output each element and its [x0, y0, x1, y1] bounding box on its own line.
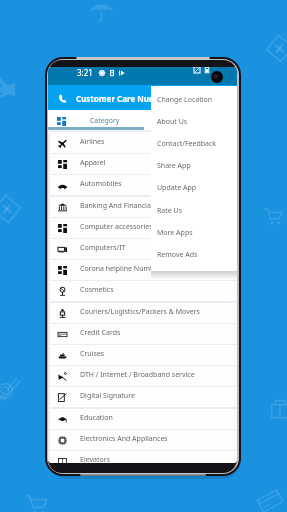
staticText: Cruises [80, 349, 105, 359]
button[interactable]: DTH / Internet / Broadband service [50, 366, 237, 386]
staticText: Change Location [157, 95, 213, 105]
staticText: Cosmetics [80, 285, 114, 295]
button[interactable]: Rate Us [151, 201, 237, 223]
button[interactable]: Share App [151, 156, 237, 178]
staticText: Elevators [80, 455, 110, 463]
button[interactable]: Banking And Financial Services [50, 197, 237, 217]
staticText: Share App [157, 161, 191, 171]
staticText: Electronics And Appliances [80, 434, 168, 444]
button[interactable]: Computers/IT [50, 239, 237, 259]
button[interactable]: Electronics And Appliances [50, 430, 237, 450]
button[interactable]: Contact/Feedback [151, 134, 237, 156]
staticText: Rate Us [157, 206, 183, 216]
button[interactable]: Automobiles [50, 175, 237, 195]
staticText: Apparel [80, 158, 106, 168]
staticText: Computers/IT [80, 243, 126, 253]
staticText: Remove Ads [157, 250, 198, 260]
button[interactable]: About Us [151, 112, 237, 134]
staticText: Computer accessories [80, 222, 153, 232]
staticText: More Apps [157, 228, 193, 238]
button[interactable]: Cruises [50, 345, 237, 365]
staticText: Credit Cards [80, 328, 121, 338]
button[interactable]: Credit Cards [50, 324, 237, 344]
button[interactable]: Airlines [50, 133, 237, 153]
staticText: Update App [157, 183, 197, 193]
staticText: DTH / Internet / Broadband service [80, 370, 195, 380]
button[interactable]: Elevators [50, 451, 237, 463]
staticText: Education [80, 413, 113, 423]
staticText: Customer Care Numbers [76, 93, 175, 104]
button[interactable]: Change Location [151, 90, 237, 112]
button[interactable]: Remove Ads [151, 245, 237, 267]
staticText: Airlines [80, 137, 105, 147]
button[interactable]: Apparel [50, 154, 237, 174]
staticText: Banking And Financial Services [80, 201, 182, 211]
staticText: 3:21 [77, 67, 93, 78]
staticText: Digital Signature [80, 391, 135, 401]
button[interactable]: Digital Signature [50, 387, 237, 407]
staticText: Category [90, 116, 120, 125]
button[interactable]: Update App [151, 178, 237, 200]
button[interactable]: Cosmetics [50, 281, 237, 301]
button[interactable]: Education [50, 409, 237, 429]
staticText: About Us [157, 117, 188, 127]
staticText: Automobiles [80, 179, 122, 189]
staticText: Corona helpline Numbers [80, 264, 165, 274]
button[interactable]: Corona helpline Numbers [50, 260, 237, 280]
button[interactable]: Couriers/Logistics/Packers & Movers [50, 303, 237, 323]
button[interactable]: Computer accessories [50, 218, 237, 238]
button[interactable]: Category [48, 110, 237, 132]
staticText: Couriers/Logistics/Packers & Movers [80, 307, 200, 317]
other: Call [58, 94, 67, 103]
staticText: Contact/Feedback [157, 139, 217, 149]
button[interactable]: More Apps [151, 223, 237, 245]
